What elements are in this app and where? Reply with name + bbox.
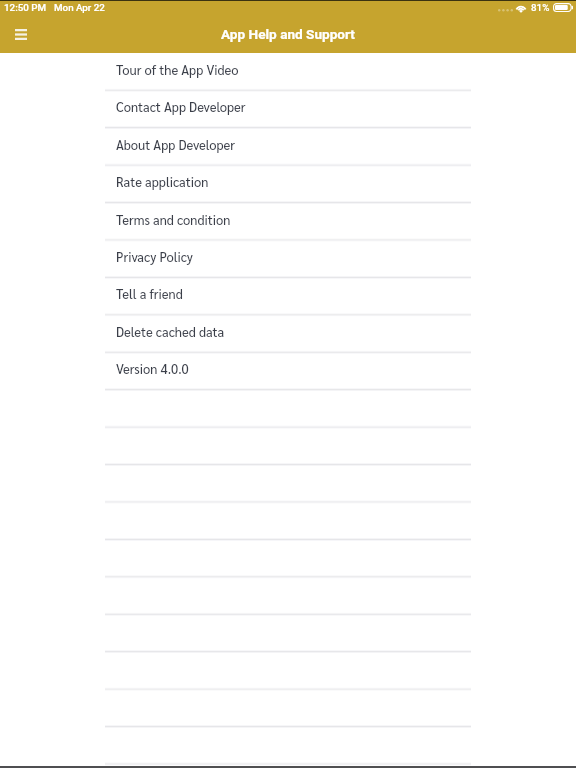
staticText: Mon Apr 22 bbox=[54, 2, 105, 13]
button[interactable]: Tour of the App Video bbox=[0, 53, 576, 90]
button[interactable]: Open navigation menu bbox=[0, 17, 42, 53]
button[interactable]: Version 4.0.0 bbox=[0, 352, 576, 389]
button[interactable]: Privacy Policy bbox=[0, 240, 576, 277]
button[interactable] bbox=[0, 614, 576, 651]
button[interactable]: Terms and condition bbox=[0, 203, 576, 240]
button[interactable] bbox=[0, 539, 576, 576]
staticText: Contact App Developer bbox=[116, 98, 246, 115]
staticText: 81% bbox=[531, 2, 550, 13]
button[interactable]: Contact App Developer bbox=[0, 90, 576, 127]
staticText: Rate application bbox=[116, 173, 209, 190]
staticText: Tell a friend bbox=[116, 285, 183, 302]
button[interactable]: Tell a friend bbox=[0, 277, 576, 314]
button[interactable]: Delete cached data bbox=[0, 315, 576, 352]
staticText: 12:50 PM bbox=[4, 2, 47, 13]
staticText: Delete cached data bbox=[116, 323, 225, 340]
button[interactable]: Rate application bbox=[0, 165, 576, 202]
staticText: Tour of the App Video bbox=[116, 61, 239, 78]
button[interactable]: About App Developer bbox=[0, 128, 576, 165]
staticText: Version 4.0.0 bbox=[116, 360, 189, 377]
staticText: About App Developer bbox=[116, 136, 235, 153]
staticText: Privacy Policy bbox=[116, 248, 193, 265]
staticText: Terms and condition bbox=[116, 211, 231, 228]
staticText: App Help and Support bbox=[221, 26, 355, 42]
